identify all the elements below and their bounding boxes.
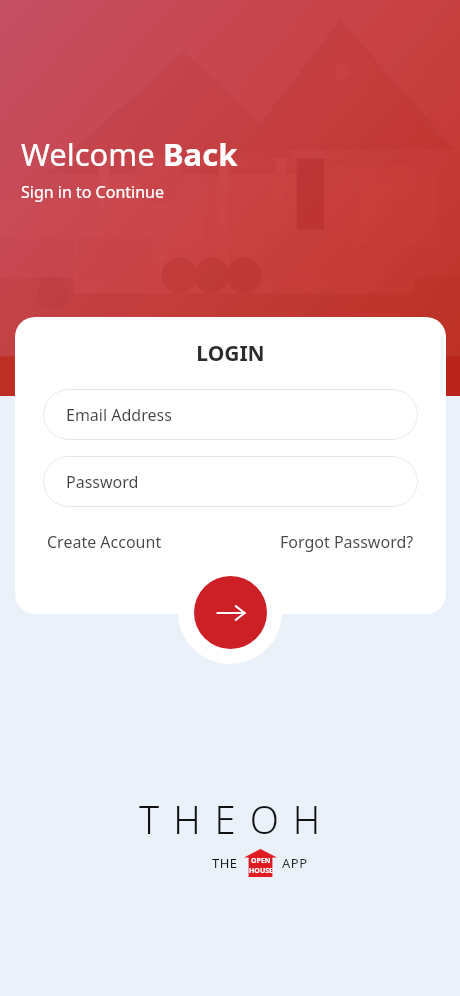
button[interactable]: Sign in	[194, 576, 267, 649]
staticText: Back	[163, 133, 238, 175]
button[interactable]: Create Account	[43, 525, 166, 559]
staticText: HOUSE	[249, 866, 273, 876]
staticText: APP	[282, 854, 308, 872]
button[interactable]: Password	[43, 456, 418, 507]
staticText: Email Address	[66, 404, 172, 426]
staticText: Sign in to Continue	[21, 181, 164, 203]
staticText: LOGIN	[15, 339, 446, 368]
button[interactable]: Forgot Password?	[276, 525, 418, 559]
staticText: Welcome	[21, 133, 163, 175]
staticText: THEOH	[139, 793, 335, 845]
staticText: THE	[212, 854, 238, 872]
staticText: OPEN	[251, 856, 271, 866]
staticText: Password	[66, 471, 139, 493]
button[interactable]: Email Address	[43, 389, 418, 440]
staticText: Create Account	[47, 531, 162, 553]
staticText: Forgot Password?	[280, 531, 414, 553]
